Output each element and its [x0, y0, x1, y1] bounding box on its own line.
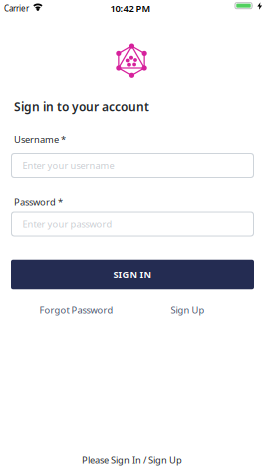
staticText: 10:42 PM	[110, 2, 150, 14]
staticText: Username *	[14, 133, 66, 146]
button[interactable]: SIGN IN	[11, 260, 254, 289]
staticText: Please Sign In / Sign Up	[82, 454, 182, 466]
button[interactable]: Sign Up	[170, 304, 204, 316]
staticText: Enter your username	[22, 159, 114, 172]
staticText: Sign Up	[170, 304, 204, 316]
staticText: Password *	[14, 196, 63, 208]
staticText: Carrier	[4, 3, 29, 14]
staticText: Sign in to your account	[14, 98, 149, 114]
staticText: Enter your password	[22, 218, 112, 230]
button[interactable]: Forgot Password	[39, 304, 113, 316]
staticText: SIGN IN	[113, 268, 151, 281]
staticText: Forgot Password	[39, 304, 113, 316]
